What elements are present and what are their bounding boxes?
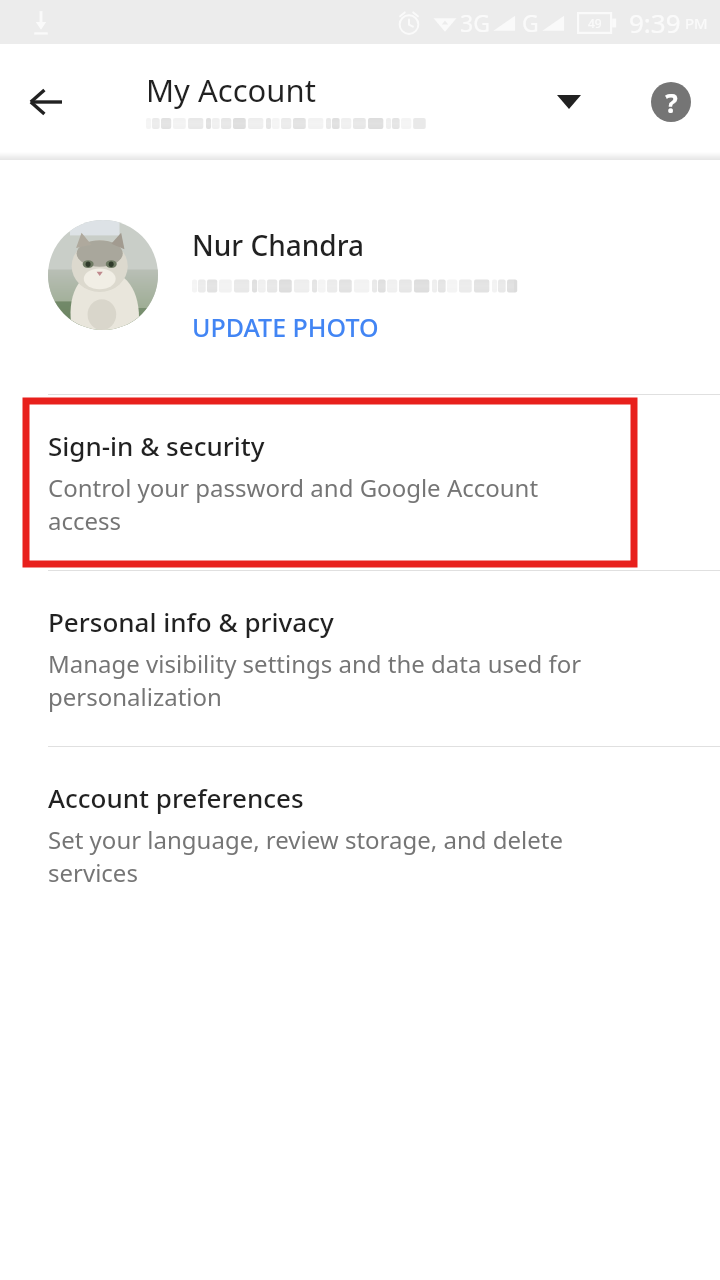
button[interactable]: Sign-in & security: [0, 395, 720, 570]
staticText: 9:39: [629, 5, 681, 40]
staticText: 49: [588, 15, 602, 31]
button[interactable]: Back: [18, 74, 74, 130]
button[interactable]: Switch account: [545, 78, 593, 126]
staticText: Account preferences: [48, 780, 304, 815]
staticText: My Account: [146, 69, 316, 111]
staticText: Nur Chandra: [192, 226, 364, 264]
staticText: G: [522, 7, 539, 38]
button[interactable]: Personal info & privacy: [0, 571, 720, 746]
staticText: Set your language, review storage, and d…: [48, 823, 563, 889]
button[interactable]: UPDATE PHOTO: [192, 310, 379, 344]
staticText: Control your password and Google Account…: [48, 471, 539, 537]
staticText: Manage visibility settings and the data …: [48, 647, 582, 713]
button[interactable]: Help: [647, 78, 695, 126]
button[interactable]: Nur Chandra: [0, 160, 720, 374]
staticText: 3G: [460, 7, 490, 38]
staticText: UPDATE PHOTO: [192, 310, 379, 344]
staticText: Sign-in & security: [48, 428, 265, 463]
staticText: ?: [665, 85, 678, 120]
staticText: Personal info & privacy: [48, 604, 334, 639]
staticText: PM: [685, 13, 708, 33]
button[interactable]: Account preferences: [0, 747, 720, 922]
